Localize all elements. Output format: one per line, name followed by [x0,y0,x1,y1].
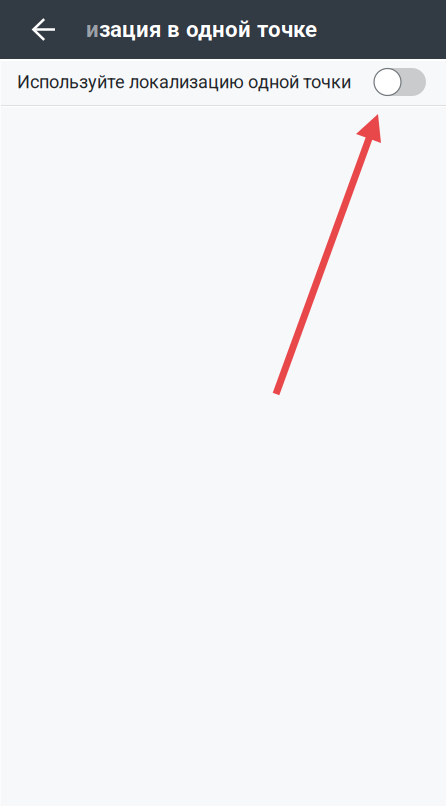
button[interactable]: Назад [16,0,72,59]
staticText: и [86,16,99,43]
staticText: зация в одной точке [99,16,317,43]
button[interactable]: Используйте локализацию одной точки [0,59,446,105]
staticText: Используйте локализацию одной точки [17,71,351,93]
